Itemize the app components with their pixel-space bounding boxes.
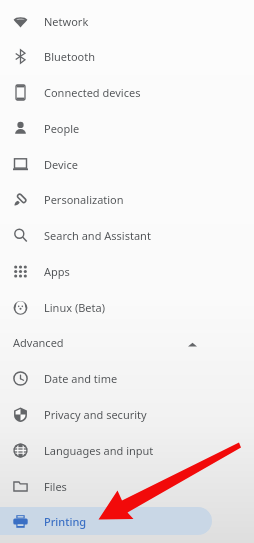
staticText: Printing bbox=[44, 514, 87, 529]
staticText: Privacy and security bbox=[44, 407, 147, 422]
button[interactable]: Advanced bbox=[0, 324, 254, 360]
staticText: Apps bbox=[44, 264, 70, 279]
staticText: Network bbox=[44, 14, 89, 29]
staticText: Advanced bbox=[13, 335, 64, 350]
button[interactable]: Languages and input bbox=[0, 432, 254, 468]
button[interactable]: Files bbox=[0, 468, 254, 504]
staticText: Bluetooth bbox=[44, 49, 96, 64]
button[interactable]: Apps bbox=[0, 253, 254, 289]
button[interactable]: People bbox=[0, 110, 254, 146]
button[interactable]: Search and Assistant bbox=[0, 217, 254, 253]
other: Collapse advanced bbox=[188, 340, 197, 349]
staticText: Device bbox=[44, 157, 78, 172]
button[interactable]: Printing bbox=[0, 503, 254, 539]
button[interactable]: Linux (Beta) bbox=[0, 289, 254, 325]
button[interactable]: Date and time bbox=[0, 360, 254, 396]
staticText: People bbox=[44, 121, 80, 136]
staticText: Languages and input bbox=[44, 443, 154, 458]
button[interactable]: Device bbox=[0, 146, 254, 182]
staticText: Personalization bbox=[44, 192, 124, 207]
staticText: Search and Assistant bbox=[44, 228, 151, 243]
staticText: Connected devices bbox=[44, 85, 141, 100]
button[interactable]: Privacy and security bbox=[0, 396, 254, 432]
staticText: Files bbox=[44, 479, 67, 494]
button[interactable]: Bluetooth bbox=[0, 38, 254, 74]
staticText: Linux (Beta) bbox=[44, 300, 105, 315]
button[interactable]: Connected devices bbox=[0, 74, 254, 110]
staticText: Date and time bbox=[44, 371, 118, 386]
button[interactable]: Personalization bbox=[0, 181, 254, 217]
button[interactable]: Network bbox=[0, 3, 254, 39]
